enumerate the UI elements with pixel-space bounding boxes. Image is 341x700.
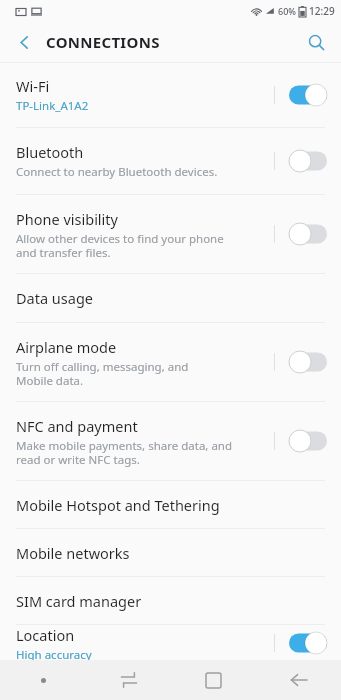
staticText: Mobile networks bbox=[16, 543, 130, 563]
button[interactable]: Search bbox=[299, 25, 333, 59]
staticText: NFC and payment bbox=[16, 416, 138, 436]
staticText: Bluetooth bbox=[16, 142, 84, 162]
button[interactable]: Location bbox=[0, 625, 341, 660]
button[interactable]: Off bbox=[289, 223, 327, 245]
button[interactable]: Recents bbox=[86, 660, 171, 700]
button[interactable]: On bbox=[289, 632, 327, 654]
staticText: Airplane mode bbox=[16, 337, 117, 357]
button[interactable]: Off bbox=[289, 150, 327, 172]
button[interactable]: Bluetooth bbox=[0, 128, 341, 194]
staticText: 12:29 bbox=[309, 4, 335, 18]
button[interactable]: Off bbox=[289, 351, 327, 373]
button[interactable]: Mobile networks bbox=[0, 529, 341, 576]
staticText: Mobile Hotspot and Tethering bbox=[16, 495, 220, 515]
button[interactable]: Airplane mode bbox=[0, 323, 341, 401]
button[interactable]: Home bbox=[171, 660, 256, 700]
staticText: Connect to nearby Bluetooth devices. bbox=[16, 164, 218, 180]
staticText: High accuracy bbox=[16, 647, 92, 660]
staticText: Make mobile payments, share data, and re… bbox=[16, 438, 233, 467]
staticText: Allow other devices to find your phone a… bbox=[16, 231, 224, 260]
staticText: SIM card manager bbox=[16, 591, 142, 611]
staticText: CONNECTIONS bbox=[46, 32, 160, 52]
button[interactable]: SIM card manager bbox=[0, 577, 341, 624]
staticText: Turn off calling, messaging, and Mobile … bbox=[16, 359, 189, 388]
staticText: Location bbox=[16, 625, 75, 645]
button[interactable]: Back bbox=[8, 26, 40, 58]
button[interactable]: Mobile Hotspot and Tethering bbox=[0, 481, 341, 528]
button[interactable]: On bbox=[289, 84, 327, 106]
button[interactable]: Off bbox=[289, 430, 327, 452]
button[interactable]: NFC and payment bbox=[0, 402, 341, 480]
staticText: 60% bbox=[278, 5, 296, 17]
button[interactable]: Data usage bbox=[0, 274, 341, 322]
other: Indicator bbox=[0, 660, 86, 700]
button[interactable]: Back bbox=[256, 660, 341, 700]
staticText: Data usage bbox=[16, 288, 93, 308]
staticText: Wi-Fi bbox=[16, 76, 50, 96]
staticText: Phone visibility bbox=[16, 209, 118, 229]
staticText: TP-Link_A1A2 bbox=[16, 98, 89, 114]
button[interactable]: Phone visibility bbox=[0, 195, 341, 273]
button[interactable]: Wi-Fi bbox=[0, 63, 341, 127]
